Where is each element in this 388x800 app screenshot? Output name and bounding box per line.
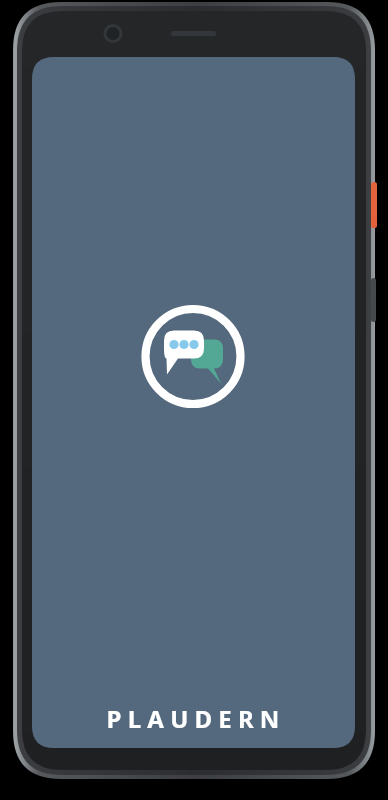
button[interactable]: Plaudern splash screen	[0, 0, 388, 800]
